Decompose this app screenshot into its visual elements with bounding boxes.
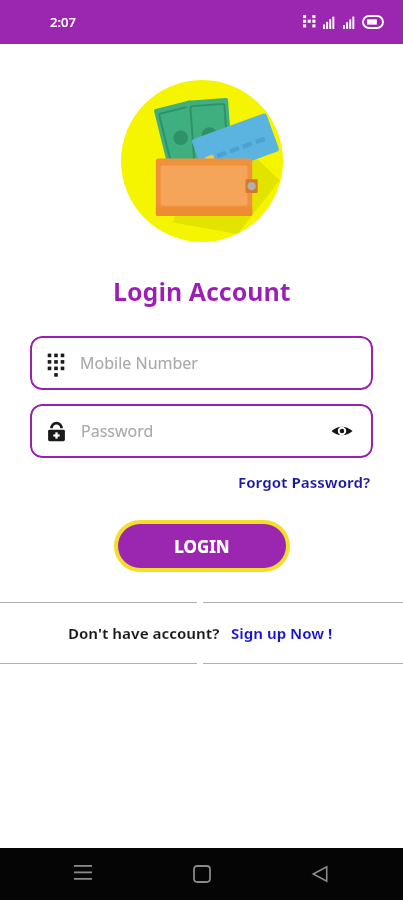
other: Password [46,421,67,442]
button[interactable]: LOGIN [114,520,290,572]
staticText: Forgot Password? [238,472,371,492]
staticText: Mobile Number [80,352,357,374]
button[interactable]: Forgot Password? [236,470,373,494]
button[interactable]: Dialpad [30,336,373,390]
staticText: Don't have account? [68,623,220,643]
button[interactable]: Back [301,855,339,893]
staticText: 2:07 [50,13,76,31]
staticText: Login Account [113,274,291,308]
button[interactable]: Recent apps [64,855,102,893]
button[interactable]: Sign up Now ! [229,621,335,645]
button[interactable]: Password [30,404,373,458]
staticText: Password [81,420,327,442]
other: Dialpad [46,353,66,373]
staticText: LOGIN [174,535,230,558]
button[interactable]: Show password [327,416,357,446]
button[interactable]: Home [183,855,221,893]
staticText: Sign up Now ! [231,623,333,643]
